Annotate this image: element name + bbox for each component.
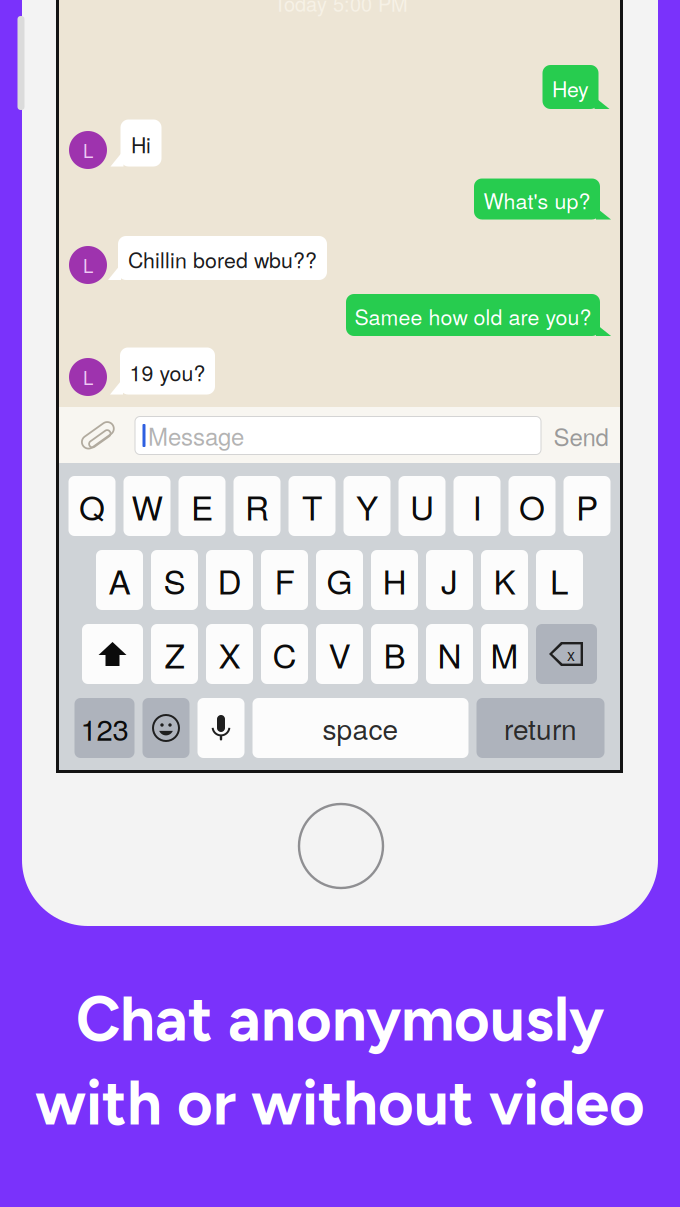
button[interactable]: R: [233, 476, 280, 536]
button[interactable]: Emoji: [142, 698, 189, 758]
button[interactable]: D: [206, 550, 253, 610]
staticText: K: [493, 556, 515, 604]
button[interactable]: M: [481, 624, 528, 684]
staticText: H: [382, 556, 406, 604]
button[interactable]: H: [371, 550, 418, 610]
staticText: M: [490, 630, 518, 678]
staticText: space: [322, 708, 398, 748]
staticText: S: [163, 556, 185, 604]
staticText: N: [437, 630, 461, 678]
button[interactable]: I: [453, 476, 500, 536]
staticText: U: [410, 482, 434, 530]
button[interactable]: Dictate: [197, 698, 244, 758]
staticText: Today 5:00 PM: [274, 0, 408, 17]
button[interactable]: Y: [343, 476, 390, 536]
button[interactable]: Shift: [82, 624, 143, 684]
button[interactable]: L: [536, 550, 583, 610]
staticText: V: [328, 630, 350, 678]
button[interactable]: K: [481, 550, 528, 610]
button[interactable]: N: [426, 624, 473, 684]
staticText: L: [83, 364, 93, 390]
staticText: D: [217, 556, 241, 604]
button[interactable]: space: [252, 698, 468, 758]
staticText: Send: [553, 419, 608, 453]
staticText: B: [383, 630, 405, 678]
staticText: Y: [356, 482, 378, 530]
button[interactable]: Chillin bored wbu??: [107, 236, 327, 280]
button[interactable]: Q: [68, 476, 115, 536]
staticText: F: [274, 556, 294, 604]
button[interactable]: S: [151, 550, 198, 610]
staticText: What's up?: [483, 185, 590, 215]
staticText: with or without video: [35, 1066, 645, 1140]
staticText: I: [472, 482, 481, 530]
staticText: L: [83, 137, 93, 163]
button[interactable]: Z: [151, 624, 198, 684]
button[interactable]: Numbers: [74, 698, 134, 758]
button[interactable]: C: [261, 624, 308, 684]
staticText: W: [131, 482, 162, 530]
button[interactable]: Samee how old are you?: [346, 294, 611, 336]
button[interactable]: U: [398, 476, 445, 536]
staticText: 19 you?: [129, 357, 205, 387]
staticText: L: [550, 556, 569, 604]
staticText: E: [191, 482, 213, 530]
staticText: X: [218, 630, 240, 678]
staticText: 123: [80, 707, 128, 749]
staticText: Q: [79, 482, 105, 530]
staticText: G: [326, 556, 352, 604]
button[interactable]: return: [476, 698, 604, 758]
button[interactable]: Delete: [536, 624, 597, 684]
staticText: Samee how old are you?: [354, 301, 591, 331]
button[interactable]: W: [123, 476, 170, 536]
staticText: Z: [164, 630, 184, 678]
button[interactable]: What's up?: [474, 178, 611, 219]
button[interactable]: F: [261, 550, 308, 610]
button[interactable]: J: [426, 550, 473, 610]
staticText: C: [272, 630, 296, 678]
button[interactable]: O: [508, 476, 555, 536]
staticText: O: [519, 482, 545, 530]
staticText: J: [441, 556, 458, 604]
button[interactable]: T: [288, 476, 335, 536]
button[interactable]: Hi: [109, 119, 161, 166]
button[interactable]: V: [316, 624, 363, 684]
staticText: x: [567, 642, 575, 665]
staticText: T: [302, 482, 322, 530]
staticText: P: [576, 482, 598, 530]
staticText: Message: [148, 418, 244, 453]
button[interactable]: A: [96, 550, 143, 610]
button[interactable]: X: [206, 624, 253, 684]
button[interactable]: Send: [543, 416, 619, 456]
staticText: Hi: [131, 129, 151, 159]
staticText: Chat anonymously: [76, 982, 604, 1056]
staticText: return: [504, 708, 577, 748]
button[interactable]: P: [563, 476, 610, 536]
staticText: Chillin bored wbu??: [128, 244, 317, 274]
staticText: A: [108, 556, 130, 604]
button[interactable]: Hey: [542, 65, 609, 109]
staticText: R: [245, 482, 269, 530]
button[interactable]: E: [178, 476, 225, 536]
button[interactable]: G: [316, 550, 363, 610]
staticText: Hey: [552, 73, 589, 103]
button[interactable]: B: [371, 624, 418, 684]
button[interactable]: Attach: [79, 419, 119, 451]
staticText: L: [83, 252, 93, 278]
button[interactable]: 19 you?: [109, 347, 215, 394]
